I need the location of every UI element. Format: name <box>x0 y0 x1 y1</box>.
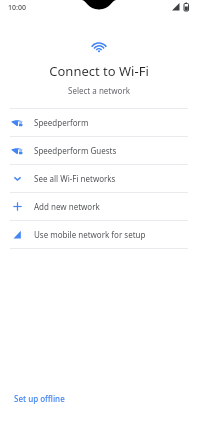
button[interactable]: See all Wi-Fi networks <box>0 165 198 192</box>
button[interactable]: Speedperform Guests <box>0 137 198 164</box>
staticText: Add new network <box>34 201 100 212</box>
staticText: 10:00 <box>8 3 26 13</box>
staticText: See all Wi-Fi networks <box>34 173 116 184</box>
staticText: Select a network <box>0 85 198 96</box>
staticText: Set up offline <box>14 393 65 404</box>
staticText: Connect to Wi-Fi <box>0 62 198 80</box>
staticText: Speedperform <box>34 117 89 128</box>
staticText: Use mobile network for setup <box>34 229 146 240</box>
staticText: Speedperform Guests <box>34 145 117 156</box>
button[interactable]: Add new network <box>0 193 198 220</box>
button[interactable]: Speedperform <box>0 109 198 136</box>
button[interactable]: Set up offline <box>8 389 71 408</box>
button[interactable]: Use mobile network for setup <box>0 221 198 248</box>
